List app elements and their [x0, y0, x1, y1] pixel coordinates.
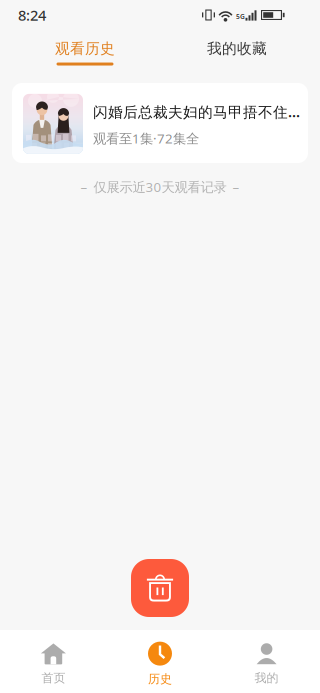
- button[interactable]: 观看历史: [40, 30, 130, 70]
- staticText: 历史: [148, 672, 172, 686]
- button[interactable]: 我的收藏: [192, 30, 282, 70]
- staticText: 8:24: [18, 5, 46, 25]
- staticText: – 仅展示近30天观看记录 –: [80, 178, 239, 196]
- staticText: 我的: [255, 671, 279, 685]
- button[interactable]: 我的: [213, 630, 320, 693]
- button[interactable]: 闪婚后总裁夫妇的马甲捂不住了: [12, 83, 308, 163]
- button[interactable]: 历史: [107, 630, 213, 693]
- staticText: 观看至1集·72集全: [93, 129, 199, 147]
- staticText: 我的收藏: [207, 39, 267, 57]
- staticText: 闪婚后总裁夫妇的马甲捂不住了: [93, 102, 302, 121]
- staticText: 观看历史: [55, 39, 115, 57]
- staticText: 首页: [41, 671, 65, 685]
- button[interactable]: Clear watch history: [131, 559, 189, 617]
- button[interactable]: 首页: [0, 630, 107, 693]
- staticText: 5G: [236, 12, 245, 21]
